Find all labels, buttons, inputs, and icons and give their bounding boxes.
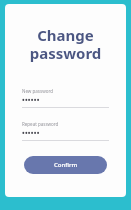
staticText: Confirm <box>54 161 78 169</box>
staticText: •••••• <box>22 96 40 106</box>
staticText: Change password <box>5 25 126 64</box>
staticText: •••••• <box>22 129 40 139</box>
button[interactable]: Confirm <box>24 156 107 174</box>
button[interactable]: Repeat password <box>22 121 109 141</box>
button[interactable]: New password <box>22 88 109 108</box>
staticText: New password <box>22 88 53 94</box>
staticText: Repeat password <box>22 121 59 127</box>
